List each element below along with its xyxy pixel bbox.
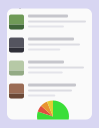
button[interactable]	[9, 12, 90, 31]
button[interactable]	[9, 81, 90, 100]
button[interactable]	[9, 58, 90, 77]
button[interactable]	[9, 35, 90, 54]
staticText: Report	[9, 0, 35, 9]
